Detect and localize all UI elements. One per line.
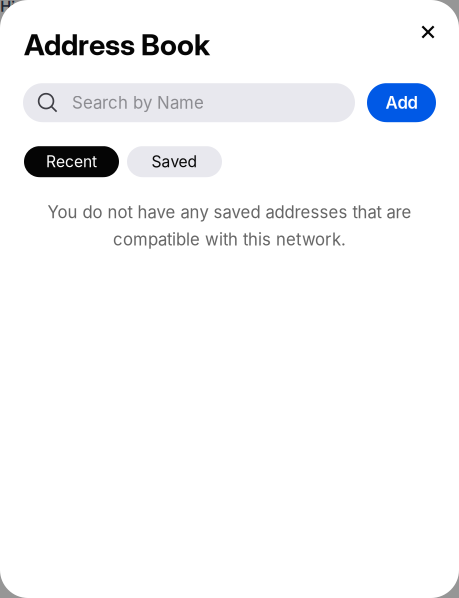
staticText: Recent [46, 152, 97, 171]
staticText: Search by Name [72, 92, 204, 113]
staticText: compatible with this network. [113, 229, 346, 249]
staticText: History [0, 0, 52, 15]
staticText: Add [385, 92, 417, 113]
button[interactable]: Close [411, 15, 445, 49]
button[interactable]: Add [367, 83, 436, 122]
staticText: You do not have any saved addresses that… [47, 202, 411, 222]
button[interactable]: Saved [127, 146, 222, 177]
staticText: Saved [151, 152, 197, 171]
staticText: Address Book [24, 27, 210, 62]
button[interactable]: Recent [24, 146, 119, 177]
button[interactable]: Search by Name [23, 83, 355, 122]
